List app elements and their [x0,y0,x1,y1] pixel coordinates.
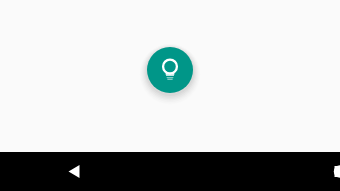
button[interactable]: Back [0,152,340,191]
button[interactable]: Toggle flashlight [147,47,193,93]
